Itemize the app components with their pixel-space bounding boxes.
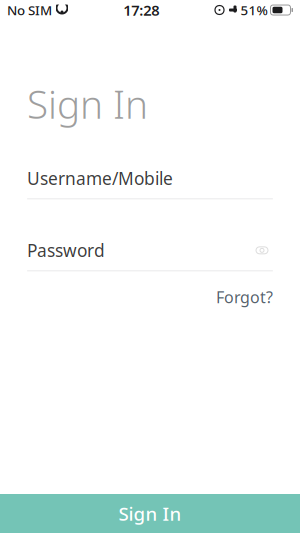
staticText: Password bbox=[27, 239, 105, 262]
staticText: 51% bbox=[240, 1, 267, 19]
button[interactable]: Show password bbox=[251, 241, 273, 259]
button[interactable]: Forgot? bbox=[216, 283, 273, 310]
staticText: Forgot? bbox=[216, 286, 273, 307]
staticText: Sign In bbox=[118, 501, 181, 526]
staticText: Username/Mobile bbox=[27, 167, 173, 190]
staticText: No SIM bbox=[7, 1, 52, 19]
button[interactable]: Sign In bbox=[0, 494, 300, 533]
staticText: 17:28 bbox=[123, 0, 159, 20]
staticText: Sign In bbox=[27, 78, 148, 129]
